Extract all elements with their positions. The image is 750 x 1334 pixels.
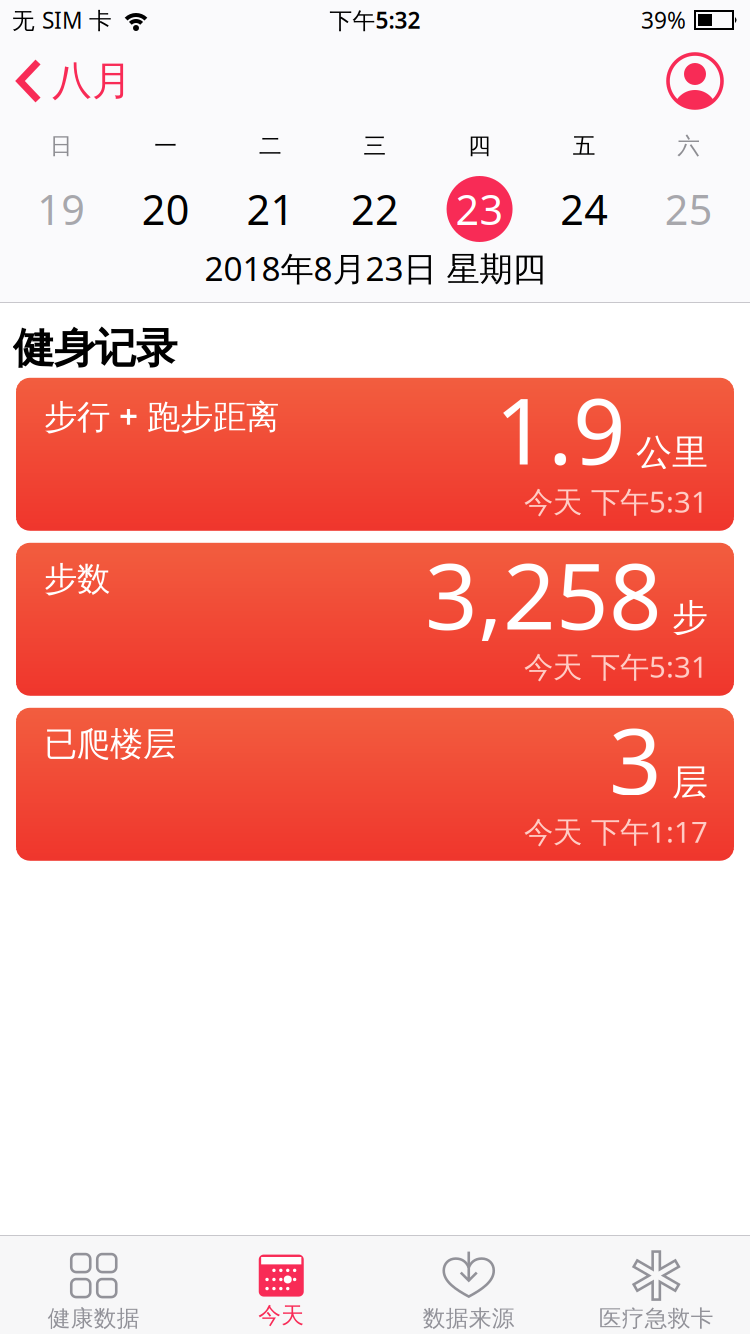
button[interactable]: 今天 — [187, 1236, 375, 1334]
button[interactable]: 数据来源 — [375, 1236, 562, 1334]
staticText: 下午5:32 — [329, 5, 420, 35]
staticText: 医疗急救卡 — [599, 1305, 714, 1332]
staticText: 25 — [665, 182, 713, 236]
button[interactable]: 23 — [427, 176, 532, 242]
staticText: 3 — [609, 698, 662, 820]
staticText: 八月 — [52, 56, 132, 105]
staticText: 日 — [50, 132, 73, 160]
staticText: 一 — [154, 132, 177, 160]
staticText: 健康数据 — [48, 1305, 140, 1332]
staticText: 今天 — [258, 1302, 304, 1329]
button[interactable]: 医疗急救卡 — [562, 1236, 750, 1334]
staticText: 20 — [142, 182, 190, 236]
button[interactable]: 19 — [9, 176, 114, 242]
staticText: 今天 下午1:17 — [524, 812, 708, 851]
button[interactable]: 21 — [218, 176, 323, 242]
staticText: 步 — [672, 595, 708, 639]
staticText: 公里 — [636, 430, 708, 474]
staticText: 六 — [677, 132, 700, 160]
staticText: 1.9 — [495, 368, 626, 490]
button[interactable]: 健康数据 — [0, 1236, 187, 1334]
staticText: 二 — [259, 132, 282, 160]
button[interactable]: 20 — [114, 176, 218, 242]
button[interactable]: 个人资料 — [668, 54, 750, 108]
staticText: 23 — [456, 182, 504, 236]
button[interactable]: 24 — [532, 176, 636, 242]
staticText: 24 — [560, 182, 608, 236]
button[interactable]: 已爬楼层 — [16, 708, 734, 861]
staticText: 五 — [573, 132, 596, 160]
button[interactable]: 25 — [636, 176, 741, 242]
staticText: 21 — [246, 182, 294, 236]
button[interactable]: 步行 + 跑步距离 — [16, 378, 734, 531]
staticText: 三 — [363, 132, 386, 160]
staticText: 四 — [468, 132, 491, 160]
staticText: 步数 — [44, 559, 110, 600]
staticText: 2018年8月23日 星期四 — [204, 246, 545, 290]
staticText: 层 — [672, 760, 708, 804]
staticText: 今天 下午5:31 — [524, 647, 708, 686]
staticText: 健身记录 — [13, 323, 177, 374]
staticText: 3,258 — [425, 533, 662, 655]
staticText: 已爬楼层 — [44, 724, 176, 765]
staticText: 22 — [351, 182, 399, 236]
button[interactable]: 步数 — [16, 543, 734, 696]
button[interactable]: 返回 八月 — [0, 56, 132, 105]
staticText: 19 — [37, 182, 85, 236]
button[interactable]: 22 — [323, 176, 427, 242]
staticText: 39% — [641, 5, 686, 35]
staticText: 数据来源 — [423, 1305, 515, 1332]
staticText: 步行 + 跑步距离 — [44, 394, 279, 438]
staticText: 无 SIM 卡 — [12, 5, 112, 35]
staticText: 今天 下午5:31 — [524, 482, 708, 521]
